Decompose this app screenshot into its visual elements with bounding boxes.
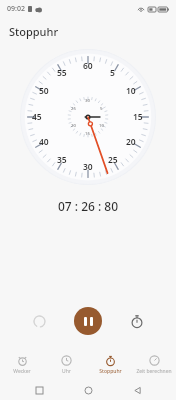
button[interactable]: Uhr (44, 350, 88, 380)
button[interactable]: Zurück (127, 380, 147, 400)
staticText: Wecker (13, 368, 31, 375)
staticText: 30 (85, 97, 90, 103)
staticText: 07 : 26 : 80 (0, 198, 176, 214)
staticText: 10 (126, 85, 136, 97)
staticText: Stoppuhr (9, 24, 59, 39)
staticText: 30 (83, 161, 93, 173)
staticText: 55 (57, 67, 67, 79)
staticText: Zeit berechnen (136, 368, 172, 375)
staticText: 15 (85, 130, 90, 136)
button[interactable]: Zurücksetzen (122, 306, 152, 336)
staticText: 25 (108, 154, 118, 166)
staticText: 35 (57, 154, 67, 166)
staticText: 20 (71, 122, 76, 128)
button[interactable]: Letzte Apps (29, 380, 49, 400)
staticText: 40 (39, 136, 49, 148)
staticText: 5 (100, 105, 103, 111)
staticText: 10 (99, 122, 104, 128)
staticText: 15 (133, 111, 143, 123)
button[interactable]: Zeit berechnen (132, 350, 176, 380)
staticText: 50 (39, 85, 49, 97)
staticText: 09:02 (7, 4, 25, 14)
staticText: Stoppuhr (99, 368, 122, 375)
staticText: 20 (126, 136, 136, 148)
staticText: 60 (83, 60, 93, 72)
staticText: 45 (32, 111, 42, 123)
button[interactable]: Stoppuhr (88, 350, 132, 380)
button[interactable]: Runde (24, 306, 54, 336)
button[interactable]: Startbildschirm (78, 380, 98, 400)
staticText: 25 (71, 105, 76, 111)
staticText: Uhr (62, 368, 71, 375)
button[interactable]: Wecker (0, 350, 44, 380)
staticText: 5 (110, 67, 115, 79)
button[interactable]: Pause (74, 307, 102, 335)
